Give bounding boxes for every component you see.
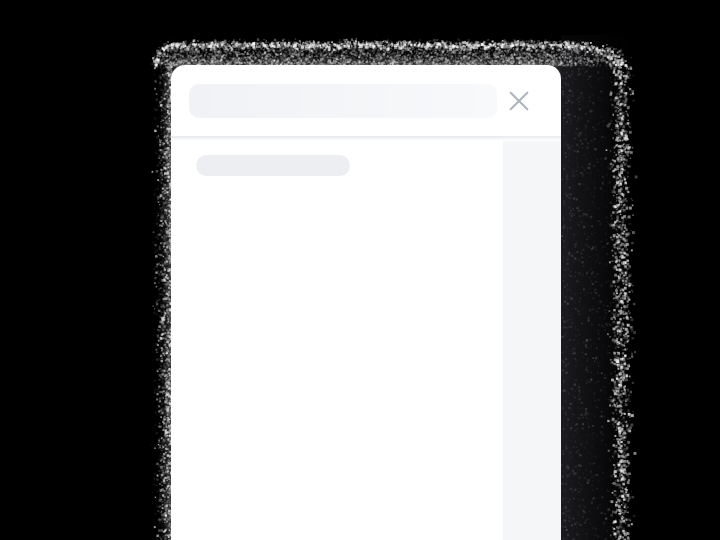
button[interactable] bbox=[497, 79, 541, 123]
